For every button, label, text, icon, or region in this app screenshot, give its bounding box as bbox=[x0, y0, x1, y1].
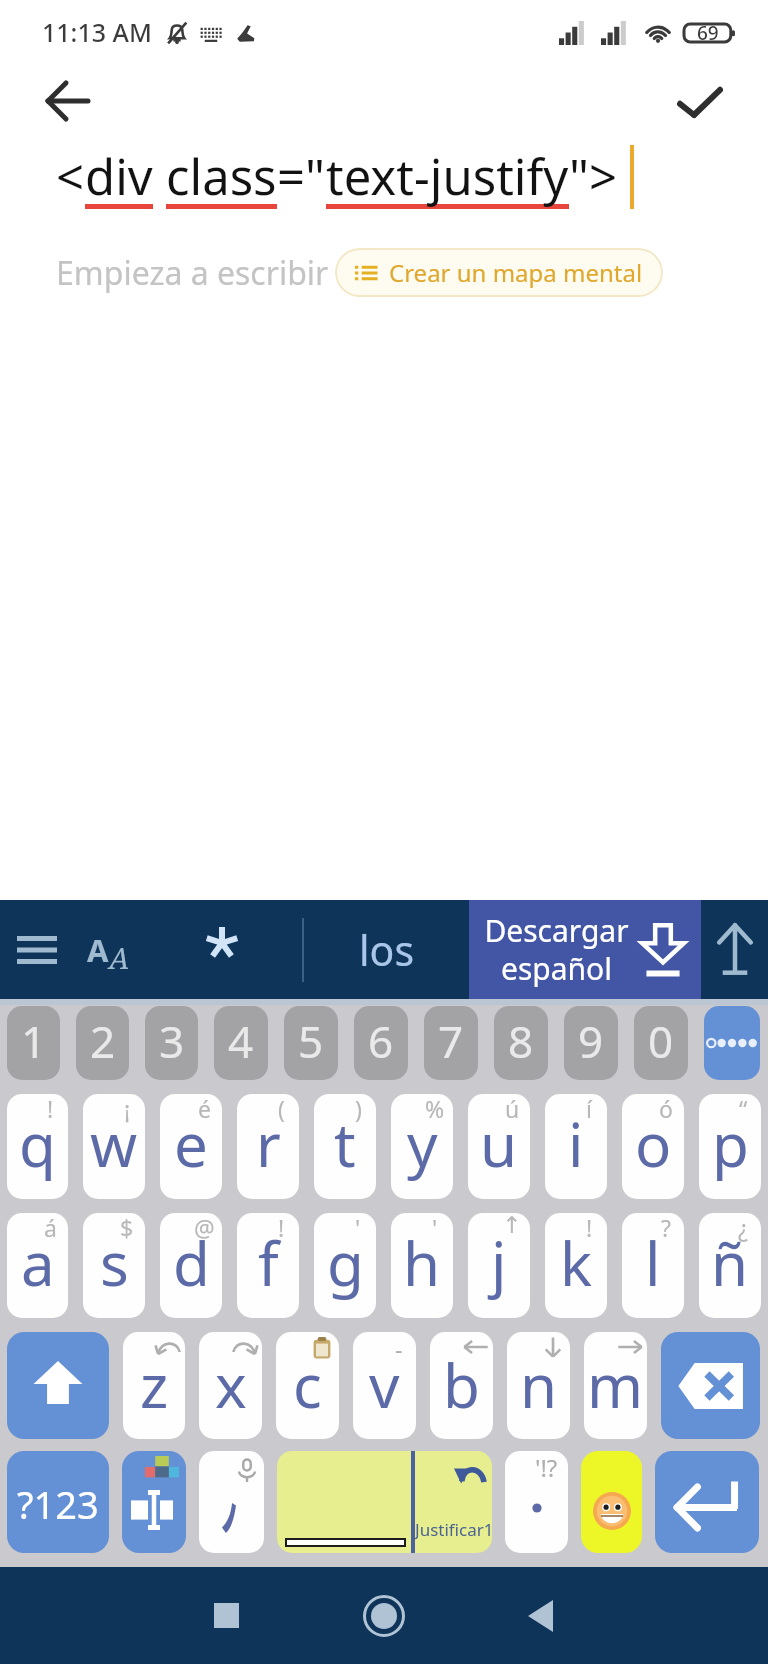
button[interactable]: Favorite bbox=[178, 900, 266, 999]
staticText: 3 bbox=[159, 1011, 185, 1071]
staticText: 2 bbox=[90, 1011, 116, 1071]
button[interactable]: @ bbox=[160, 1213, 222, 1318]
staticText: class bbox=[166, 143, 277, 210]
button[interactable]: Text format bbox=[76, 900, 140, 999]
staticText: v bbox=[369, 1344, 400, 1426]
button[interactable]: Back bbox=[40, 73, 96, 129]
button[interactable]: á bbox=[7, 1213, 68, 1318]
staticText: f bbox=[258, 1222, 279, 1304]
staticText: ! bbox=[586, 1213, 593, 1243]
staticText: ! bbox=[47, 1094, 54, 1124]
button[interactable]: 1 bbox=[7, 1006, 60, 1080]
button[interactable]: ? bbox=[622, 1213, 684, 1318]
staticText: Empieza a escribir bbox=[56, 251, 329, 295]
staticText: 8 bbox=[508, 1011, 534, 1071]
button[interactable]: 2 bbox=[76, 1006, 129, 1080]
staticText: ú bbox=[505, 1094, 520, 1124]
button[interactable]: x bbox=[199, 1332, 262, 1439]
staticText: ñ bbox=[711, 1222, 749, 1304]
button[interactable]: 0 bbox=[634, 1006, 688, 1080]
button[interactable]: 8 bbox=[494, 1006, 548, 1080]
staticText: h bbox=[403, 1222, 441, 1304]
button[interactable]: ! bbox=[7, 1094, 68, 1199]
button[interactable]: ( bbox=[237, 1094, 299, 1199]
staticText: k bbox=[560, 1222, 593, 1304]
button[interactable]: Share bbox=[701, 900, 768, 999]
staticText: s bbox=[100, 1222, 129, 1304]
button[interactable]: ó bbox=[622, 1094, 684, 1199]
button[interactable]: ¡ bbox=[83, 1094, 145, 1199]
staticText: t bbox=[334, 1103, 356, 1185]
staticText: ( bbox=[278, 1094, 285, 1124]
button[interactable]: Crear un mapa mental bbox=[335, 248, 663, 297]
button[interactable]: c bbox=[276, 1332, 339, 1439]
button[interactable]: los bbox=[304, 900, 469, 999]
button[interactable]: - bbox=[353, 1332, 416, 1439]
button[interactable]: Enter bbox=[655, 1451, 759, 1553]
button[interactable]: Switch input method bbox=[122, 1451, 186, 1553]
staticText: '!? bbox=[535, 1451, 558, 1484]
button[interactable]: 5 bbox=[284, 1006, 338, 1080]
button[interactable]: ↑ bbox=[468, 1213, 530, 1318]
staticText: o bbox=[635, 1103, 672, 1185]
staticText: u bbox=[480, 1103, 518, 1185]
staticText: y bbox=[407, 1103, 438, 1185]
button[interactable]: b bbox=[430, 1332, 493, 1439]
button[interactable]: ) bbox=[314, 1094, 376, 1199]
button[interactable]: Backspace bbox=[661, 1332, 760, 1439]
button[interactable]: Home bbox=[334, 1567, 434, 1664]
button[interactable]: $ bbox=[83, 1213, 145, 1318]
button[interactable]: Done bbox=[672, 73, 728, 129]
button[interactable]: ú bbox=[468, 1094, 530, 1199]
button[interactable]: ?123 bbox=[7, 1451, 109, 1553]
button[interactable]: n bbox=[507, 1332, 570, 1439]
button[interactable]: 9 bbox=[564, 1006, 618, 1080]
staticText: p bbox=[712, 1103, 749, 1185]
button[interactable]: Justificar1 bbox=[277, 1451, 492, 1553]
staticText: @ bbox=[194, 1213, 215, 1243]
button[interactable]: Menu bbox=[6, 900, 68, 999]
button[interactable]: ! bbox=[545, 1213, 607, 1318]
button[interactable] bbox=[199, 1451, 264, 1553]
button[interactable]: Emoji bbox=[581, 1451, 642, 1553]
staticText: < bbox=[56, 143, 85, 210]
button[interactable]: More options bbox=[704, 1006, 760, 1080]
button[interactable]: Shift bbox=[7, 1332, 109, 1439]
button[interactable]: ! bbox=[237, 1213, 299, 1318]
staticText: 1 bbox=[21, 1011, 47, 1071]
button[interactable]: z bbox=[123, 1332, 185, 1439]
staticText: b bbox=[443, 1344, 480, 1426]
button[interactable]: í bbox=[545, 1094, 607, 1199]
button[interactable]: 7 bbox=[424, 1006, 478, 1080]
staticText: los bbox=[359, 922, 415, 978]
staticText: j bbox=[491, 1222, 507, 1304]
button[interactable]: ' bbox=[391, 1213, 453, 1318]
button[interactable]: Descargar español bbox=[469, 900, 701, 999]
staticText: Descargar español bbox=[484, 910, 629, 989]
button[interactable]: % bbox=[391, 1094, 453, 1199]
button[interactable]: m bbox=[584, 1332, 647, 1439]
button[interactable]: “ bbox=[699, 1094, 761, 1199]
button[interactable]: 4 bbox=[214, 1006, 268, 1080]
staticText: á bbox=[44, 1213, 57, 1243]
staticText: g bbox=[327, 1222, 364, 1304]
staticText: 69 bbox=[697, 20, 719, 46]
staticText: ↑ bbox=[502, 1213, 522, 1239]
staticText: ! bbox=[278, 1213, 285, 1243]
button[interactable]: '!? bbox=[505, 1451, 568, 1553]
button[interactable]: 6 bbox=[354, 1006, 408, 1080]
button[interactable]: 3 bbox=[145, 1006, 198, 1080]
staticText: r bbox=[256, 1103, 281, 1185]
button[interactable]: ¿ bbox=[699, 1213, 761, 1318]
button[interactable]: é bbox=[160, 1094, 222, 1199]
button[interactable]: Back bbox=[490, 1567, 590, 1664]
staticText: "> bbox=[569, 143, 618, 210]
staticText: q bbox=[19, 1103, 56, 1185]
staticText: c bbox=[293, 1344, 322, 1426]
button[interactable]: ' bbox=[314, 1213, 376, 1318]
staticText: ) bbox=[355, 1094, 362, 1124]
button[interactable]: Recents bbox=[176, 1567, 276, 1664]
staticText: í bbox=[586, 1094, 592, 1124]
staticText: ¡ bbox=[124, 1094, 131, 1124]
staticText: ¿ bbox=[738, 1213, 748, 1243]
